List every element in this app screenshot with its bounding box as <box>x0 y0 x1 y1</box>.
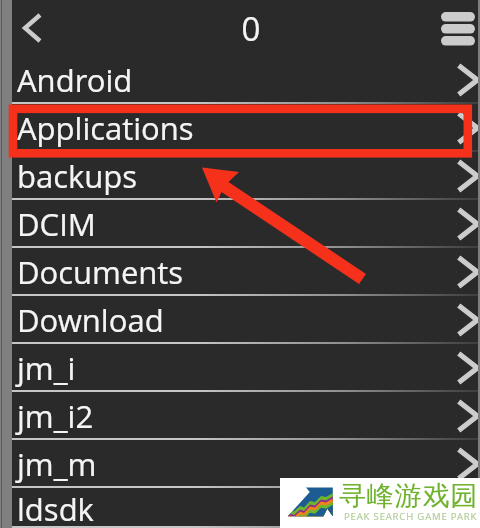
staticText: jm_i2 <box>17 395 94 437</box>
button[interactable]: Android <box>0 56 480 104</box>
button[interactable]: jm_i2 <box>0 392 480 440</box>
staticText: Applications <box>17 107 194 149</box>
staticText: PEAK SEARCH GAME PARK <box>344 510 478 523</box>
staticText: 0 <box>215 6 287 51</box>
staticText: Download <box>17 299 164 341</box>
staticText: jm_i <box>17 347 76 389</box>
staticText: ldsdk <box>17 488 94 528</box>
button[interactable]: jm_m <box>0 440 480 488</box>
button[interactable]: backups <box>0 152 480 200</box>
button[interactable]: DCIM <box>0 200 480 248</box>
button[interactable]: Download <box>0 296 480 344</box>
staticText: 寻峰游戏园 <box>339 479 479 513</box>
button[interactable]: jm_i <box>0 344 480 392</box>
button[interactable]: Menu <box>433 0 480 56</box>
staticText: jm_m <box>17 443 97 485</box>
staticText: Android <box>17 59 133 101</box>
staticText: backups <box>17 155 138 197</box>
button[interactable]: Back <box>6 4 54 52</box>
staticText: Documents <box>17 251 184 293</box>
button[interactable]: Documents <box>0 248 480 296</box>
button[interactable]: Applications <box>0 104 480 152</box>
staticText: DCIM <box>17 203 96 245</box>
button[interactable]: ldsdk <box>0 488 480 528</box>
